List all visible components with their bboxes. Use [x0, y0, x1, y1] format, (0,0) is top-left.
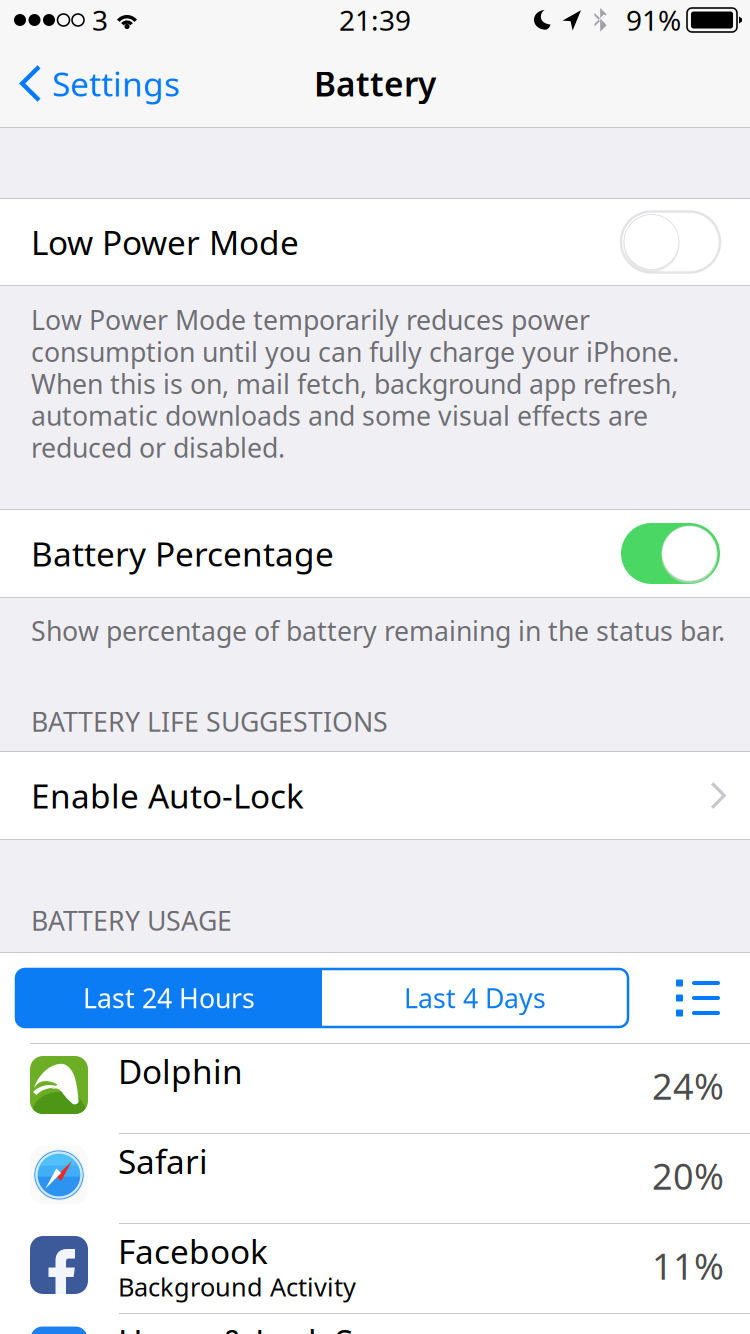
button[interactable]: Enable Auto-Lock: [0, 752, 750, 839]
staticText: Safari: [118, 1139, 208, 1183]
staticText: automatic downloads and some visual effe…: [31, 398, 648, 433]
button[interactable]: Last 4 Days: [322, 969, 628, 1027]
staticText: Show percentage of battery remaining in …: [31, 613, 725, 648]
staticText: consumption until you can fully charge y…: [31, 334, 679, 369]
staticText: Last 4 Days: [404, 980, 546, 1016]
staticText: Dolphin: [118, 1049, 243, 1093]
button[interactable]: Battery Percentage: [0, 510, 750, 597]
button[interactable]: Facebook: [0, 1224, 750, 1313]
staticText: 20%: [652, 1152, 724, 1200]
button[interactable]: Home & Lock S: [0, 1314, 750, 1334]
staticText: Facebook: [118, 1229, 268, 1273]
staticText: BATTERY USAGE: [31, 903, 232, 938]
button[interactable]: Low Power Mode: [0, 199, 750, 285]
button[interactable]: Show battery usage list: [676, 983, 720, 1012]
staticText: Last 24 Hours: [83, 980, 255, 1016]
staticText: 21:39: [339, 1, 411, 39]
staticText: Settings: [52, 61, 180, 106]
staticText: reduced or disabled.: [31, 430, 285, 465]
staticText: Battery Percentage: [31, 531, 334, 576]
staticText: 24%: [652, 1062, 724, 1110]
button[interactable]: Settings: [0, 40, 192, 127]
staticText: Home & Lock S: [118, 1319, 353, 1334]
staticText: 3: [92, 1, 108, 39]
staticText: When this is on, mail fetch, background …: [31, 366, 678, 401]
staticText: Low Power Mode: [31, 220, 299, 264]
staticText: Low Power Mode temporarily reduces power: [31, 302, 590, 337]
staticText: 11%: [652, 1242, 724, 1290]
staticText: BATTERY LIFE SUGGESTIONS: [31, 704, 388, 739]
button[interactable]: Safari: [0, 1134, 750, 1223]
button[interactable]: Last 24 Hours: [16, 969, 322, 1027]
staticText: Enable Auto-Lock: [31, 773, 304, 818]
button[interactable]: Dolphin: [0, 1044, 750, 1133]
staticText: Background Activity: [118, 1270, 356, 1303]
staticText: 91%: [626, 1, 681, 39]
staticText: Battery: [314, 61, 436, 106]
